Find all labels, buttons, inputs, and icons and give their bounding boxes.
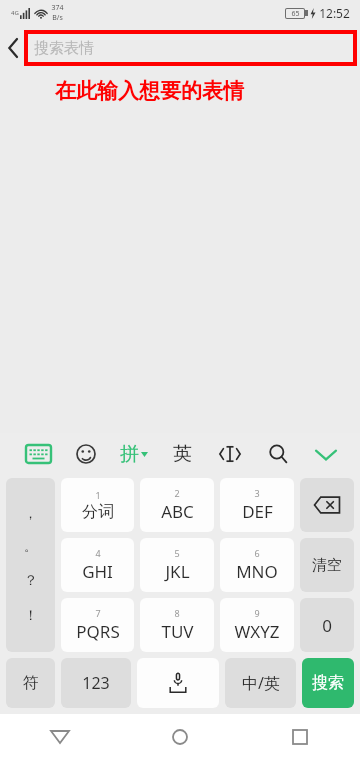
button[interactable]: 4 xyxy=(61,538,134,592)
staticText: GHI xyxy=(82,560,113,583)
staticText: 3 xyxy=(254,487,260,499)
button[interactable]: 搜索 xyxy=(302,658,354,708)
staticText: B/s xyxy=(52,13,63,23)
button[interactable]: 3 xyxy=(220,478,294,532)
staticText: 拼 xyxy=(120,442,139,466)
staticText: 374 xyxy=(51,3,64,13)
button[interactable]: 中/英 xyxy=(225,658,296,708)
staticText: 清空 xyxy=(312,556,342,575)
button[interactable]: ， xyxy=(6,478,55,652)
staticText: 在此输入想要的表情 xyxy=(55,78,244,104)
staticText: DEF xyxy=(242,500,273,523)
button[interactable]: Hide keyboard xyxy=(302,434,350,474)
other: Backspace xyxy=(314,496,340,514)
button[interactable]: 1 xyxy=(61,478,134,532)
button[interactable]: Back xyxy=(0,28,26,68)
staticText: 4G xyxy=(11,9,19,17)
button[interactable]: 清空 xyxy=(300,538,354,592)
button[interactable]: 英 xyxy=(158,434,206,474)
button[interactable]: 9 xyxy=(220,598,294,652)
button[interactable]: Cursor move xyxy=(206,434,254,474)
staticText: 中/英 xyxy=(242,672,280,694)
button[interactable]: Voice input / Space xyxy=(137,658,219,708)
other: Voice input / Space xyxy=(165,672,191,694)
button[interactable]: 0 xyxy=(300,598,354,652)
staticText: 9 xyxy=(254,607,260,619)
button[interactable]: 符 xyxy=(6,658,55,708)
button[interactable]: 6 xyxy=(220,538,294,592)
staticText: 65 xyxy=(291,9,300,18)
button[interactable]: Back xyxy=(0,714,120,760)
staticText: 分词 xyxy=(82,502,114,522)
staticText: 2 xyxy=(174,487,180,499)
staticText: 7 xyxy=(95,607,101,619)
staticText: ABC xyxy=(161,500,194,523)
staticText: ？ xyxy=(24,572,38,590)
button[interactable]: Emoji xyxy=(62,434,110,474)
staticText: PQRS xyxy=(76,620,120,643)
button[interactable]: 搜索表情 xyxy=(26,32,355,64)
staticText: 5 xyxy=(174,547,180,559)
button[interactable]: 5 xyxy=(140,538,214,592)
staticText: 1 xyxy=(95,489,101,501)
staticText: 。 xyxy=(24,538,37,554)
staticText: 搜索 xyxy=(312,673,344,693)
button[interactable]: 8 xyxy=(140,598,214,652)
staticText: 123 xyxy=(82,672,110,694)
button[interactable]: 7 xyxy=(61,598,134,652)
staticText: ！ xyxy=(24,607,38,625)
staticText: ， xyxy=(24,505,37,521)
staticText: 4 xyxy=(95,547,101,559)
staticText: 英 xyxy=(173,442,192,466)
staticText: MNO xyxy=(236,560,278,583)
staticText: 8 xyxy=(174,607,180,619)
staticText: 0 xyxy=(322,614,332,637)
staticText: 符 xyxy=(23,673,39,693)
button[interactable]: 拼 xyxy=(110,434,158,474)
staticText: 6 xyxy=(254,547,260,559)
button[interactable]: Keyboard xyxy=(14,434,62,474)
button[interactable]: 123 xyxy=(61,658,131,708)
staticText: TUV xyxy=(161,620,194,643)
button[interactable]: Backspace xyxy=(300,478,354,532)
staticText: JKL xyxy=(165,560,190,583)
button[interactable]: Recents xyxy=(240,714,360,760)
staticText: 搜索表情 xyxy=(34,39,94,58)
staticText: 12:52 xyxy=(319,5,350,21)
button[interactable]: 2 xyxy=(140,478,214,532)
button[interactable]: Home xyxy=(120,714,240,760)
staticText: WXYZ xyxy=(234,620,280,643)
button[interactable]: Search xyxy=(254,434,302,474)
